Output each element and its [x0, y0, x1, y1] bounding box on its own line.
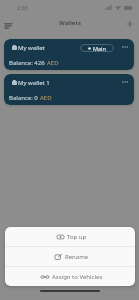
button[interactable]: Rename	[5, 247, 135, 266]
staticText: Main	[93, 45, 106, 52]
button[interactable]: Add wallet	[122, 16, 138, 32]
button[interactable]: Assign to Vehicles	[5, 267, 135, 286]
staticText: Assign to Vehicles	[52, 273, 103, 281]
button[interactable]: More options	[118, 40, 131, 53]
staticText: Balance: 426	[9, 59, 47, 67]
staticText: Wallets	[59, 19, 82, 27]
button[interactable]: More options	[118, 75, 131, 88]
staticText: AED	[47, 59, 59, 67]
staticText: My wallet 1	[18, 79, 50, 87]
button[interactable]: Menu	[1, 18, 16, 33]
staticText: Top up	[67, 233, 87, 241]
button[interactable]: My wallet	[4, 39, 134, 70]
button[interactable]: Top up	[5, 227, 135, 246]
staticText: Balance: 0	[9, 94, 40, 102]
button[interactable]: Main	[80, 44, 114, 52]
staticText: Rename	[65, 253, 89, 261]
staticText: My wallet	[18, 44, 45, 52]
staticText: 2:03	[17, 4, 28, 11]
staticText: AED	[40, 94, 52, 102]
button[interactable]: My wallet 1	[4, 74, 134, 105]
